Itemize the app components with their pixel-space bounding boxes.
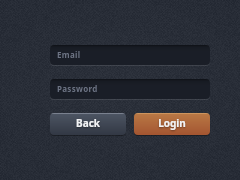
button[interactable]: Password	[50, 79, 210, 99]
staticText: Email	[57, 49, 81, 60]
staticText: Back	[76, 116, 100, 130]
button[interactable]: Back	[50, 113, 126, 135]
staticText: Login	[158, 116, 186, 130]
button[interactable]: Email	[50, 45, 210, 65]
staticText: Password	[57, 83, 98, 94]
button[interactable]: Login	[134, 113, 210, 135]
